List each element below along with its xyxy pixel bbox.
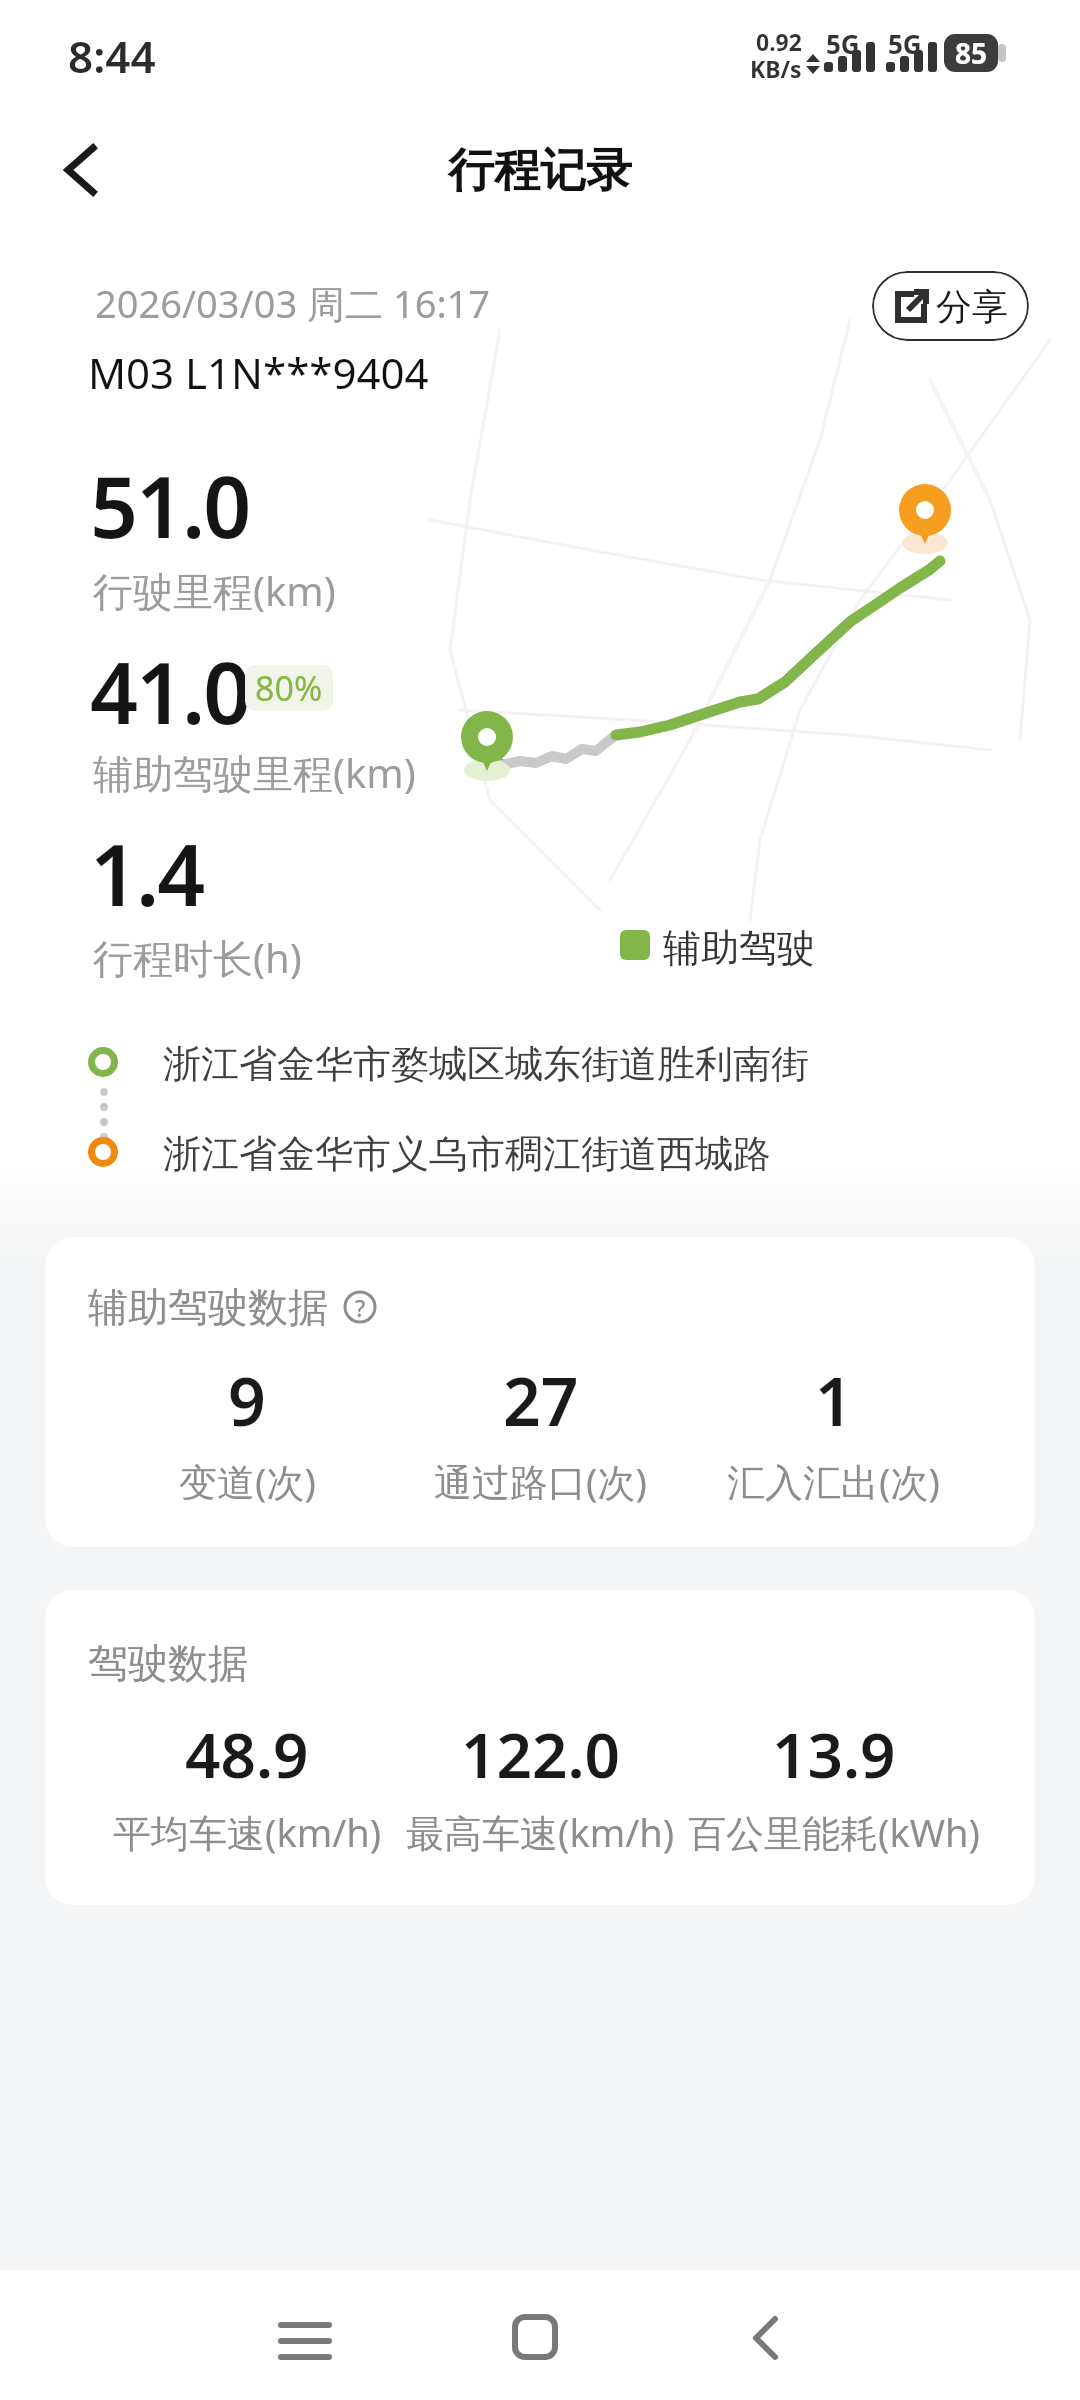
staticText: 41.0: [90, 634, 250, 748]
staticText: 5G: [826, 26, 860, 61]
button[interactable]: 分享: [872, 271, 1029, 341]
staticText: 变道(次): [179, 1455, 316, 1507]
button[interactable]: [40, 130, 120, 210]
button[interactable]: [270, 2306, 340, 2376]
staticText: 辅助驾驶里程(km): [93, 745, 416, 800]
staticText: 85: [955, 34, 988, 72]
staticText: 浙江省金华市婺城区城东街道胜利南街: [163, 1040, 809, 1088]
button[interactable]: [730, 2303, 800, 2373]
button[interactable]: [500, 2302, 570, 2372]
staticText: 8:44: [68, 26, 156, 86]
staticText: 行程时长(h): [93, 930, 302, 985]
staticText: 13.9: [772, 1712, 896, 1796]
staticText: 1.4: [90, 816, 204, 930]
staticText: 2026/03/03 周二 16:17: [95, 277, 491, 329]
staticText: 最高车速(km/h): [406, 1806, 675, 1858]
staticText: 27: [503, 1355, 579, 1445]
staticText: 80%: [255, 665, 323, 711]
staticText: 驾驶数据: [88, 1638, 248, 1688]
staticText: 百公里能耗(kWh): [688, 1806, 980, 1858]
staticText: 1: [815, 1355, 853, 1445]
staticText: 分享: [936, 284, 1008, 329]
staticText: 122.0: [461, 1712, 620, 1796]
staticText: 辅助驾驶数据: [88, 1282, 328, 1332]
staticText: 平均车速(km/h): [113, 1806, 382, 1858]
staticText: KB/s: [750, 53, 802, 80]
staticText: 0.92: [756, 26, 802, 57]
staticText: 48.9: [185, 1712, 309, 1796]
staticText: 9: [228, 1355, 266, 1445]
staticText: 行驶里程(km): [93, 563, 336, 618]
staticText: M03 L1N***9404: [88, 344, 429, 401]
staticText: 浙江省金华市义乌市稠江街道西城路: [163, 1130, 771, 1178]
staticText: ?: [355, 1292, 366, 1323]
staticText: 5G: [888, 26, 922, 61]
staticText: 51.0: [90, 448, 250, 562]
staticText: 通过路口(次): [434, 1455, 647, 1507]
staticText: 行程记录: [448, 142, 632, 200]
staticText: 汇入汇出(次): [727, 1455, 940, 1507]
staticText: 辅助驾驶: [663, 924, 815, 972]
